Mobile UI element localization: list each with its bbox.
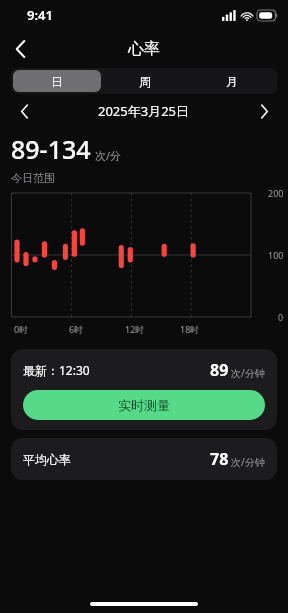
button[interactable]: Back [0,30,40,68]
staticText: 0时 [14,323,29,335]
staticText: 12时 [125,323,145,335]
staticText: 最新：12:30 [23,362,90,378]
button[interactable]: Next day [250,97,278,125]
staticText: 6时 [69,323,84,335]
button[interactable]: 月 [188,70,275,92]
staticText: 心率 [128,39,160,59]
staticText: 89 [210,359,229,381]
staticText: 次/分钟 [231,366,265,380]
staticText: 9:41 [27,6,53,24]
staticText: 0 [278,311,284,323]
staticText: 78 [210,448,229,470]
staticText: 次/分钟 [231,455,265,469]
button[interactable]: 周 [101,70,188,92]
button[interactable]: 最新：12:30 [11,349,277,430]
staticText: 18时 [180,323,200,335]
staticText: 2025年3月25日 [98,102,190,120]
staticText: 日 [51,74,63,89]
staticText: 次/分 [95,148,122,163]
staticText: 月 [226,74,238,89]
button[interactable]: 平均心率 [11,438,277,480]
staticText: 实时测量 [118,397,170,413]
button[interactable]: 实时测量 [23,390,265,420]
staticText: 100 [268,249,284,261]
staticText: 今日范围 [11,171,55,185]
button[interactable]: Previous day [10,97,38,125]
staticText: 89-134 [11,132,91,166]
button[interactable]: 日 [13,70,101,92]
staticText: 周 [139,74,151,89]
staticText: 平均心率 [23,452,71,467]
staticText: 200 [268,187,284,199]
